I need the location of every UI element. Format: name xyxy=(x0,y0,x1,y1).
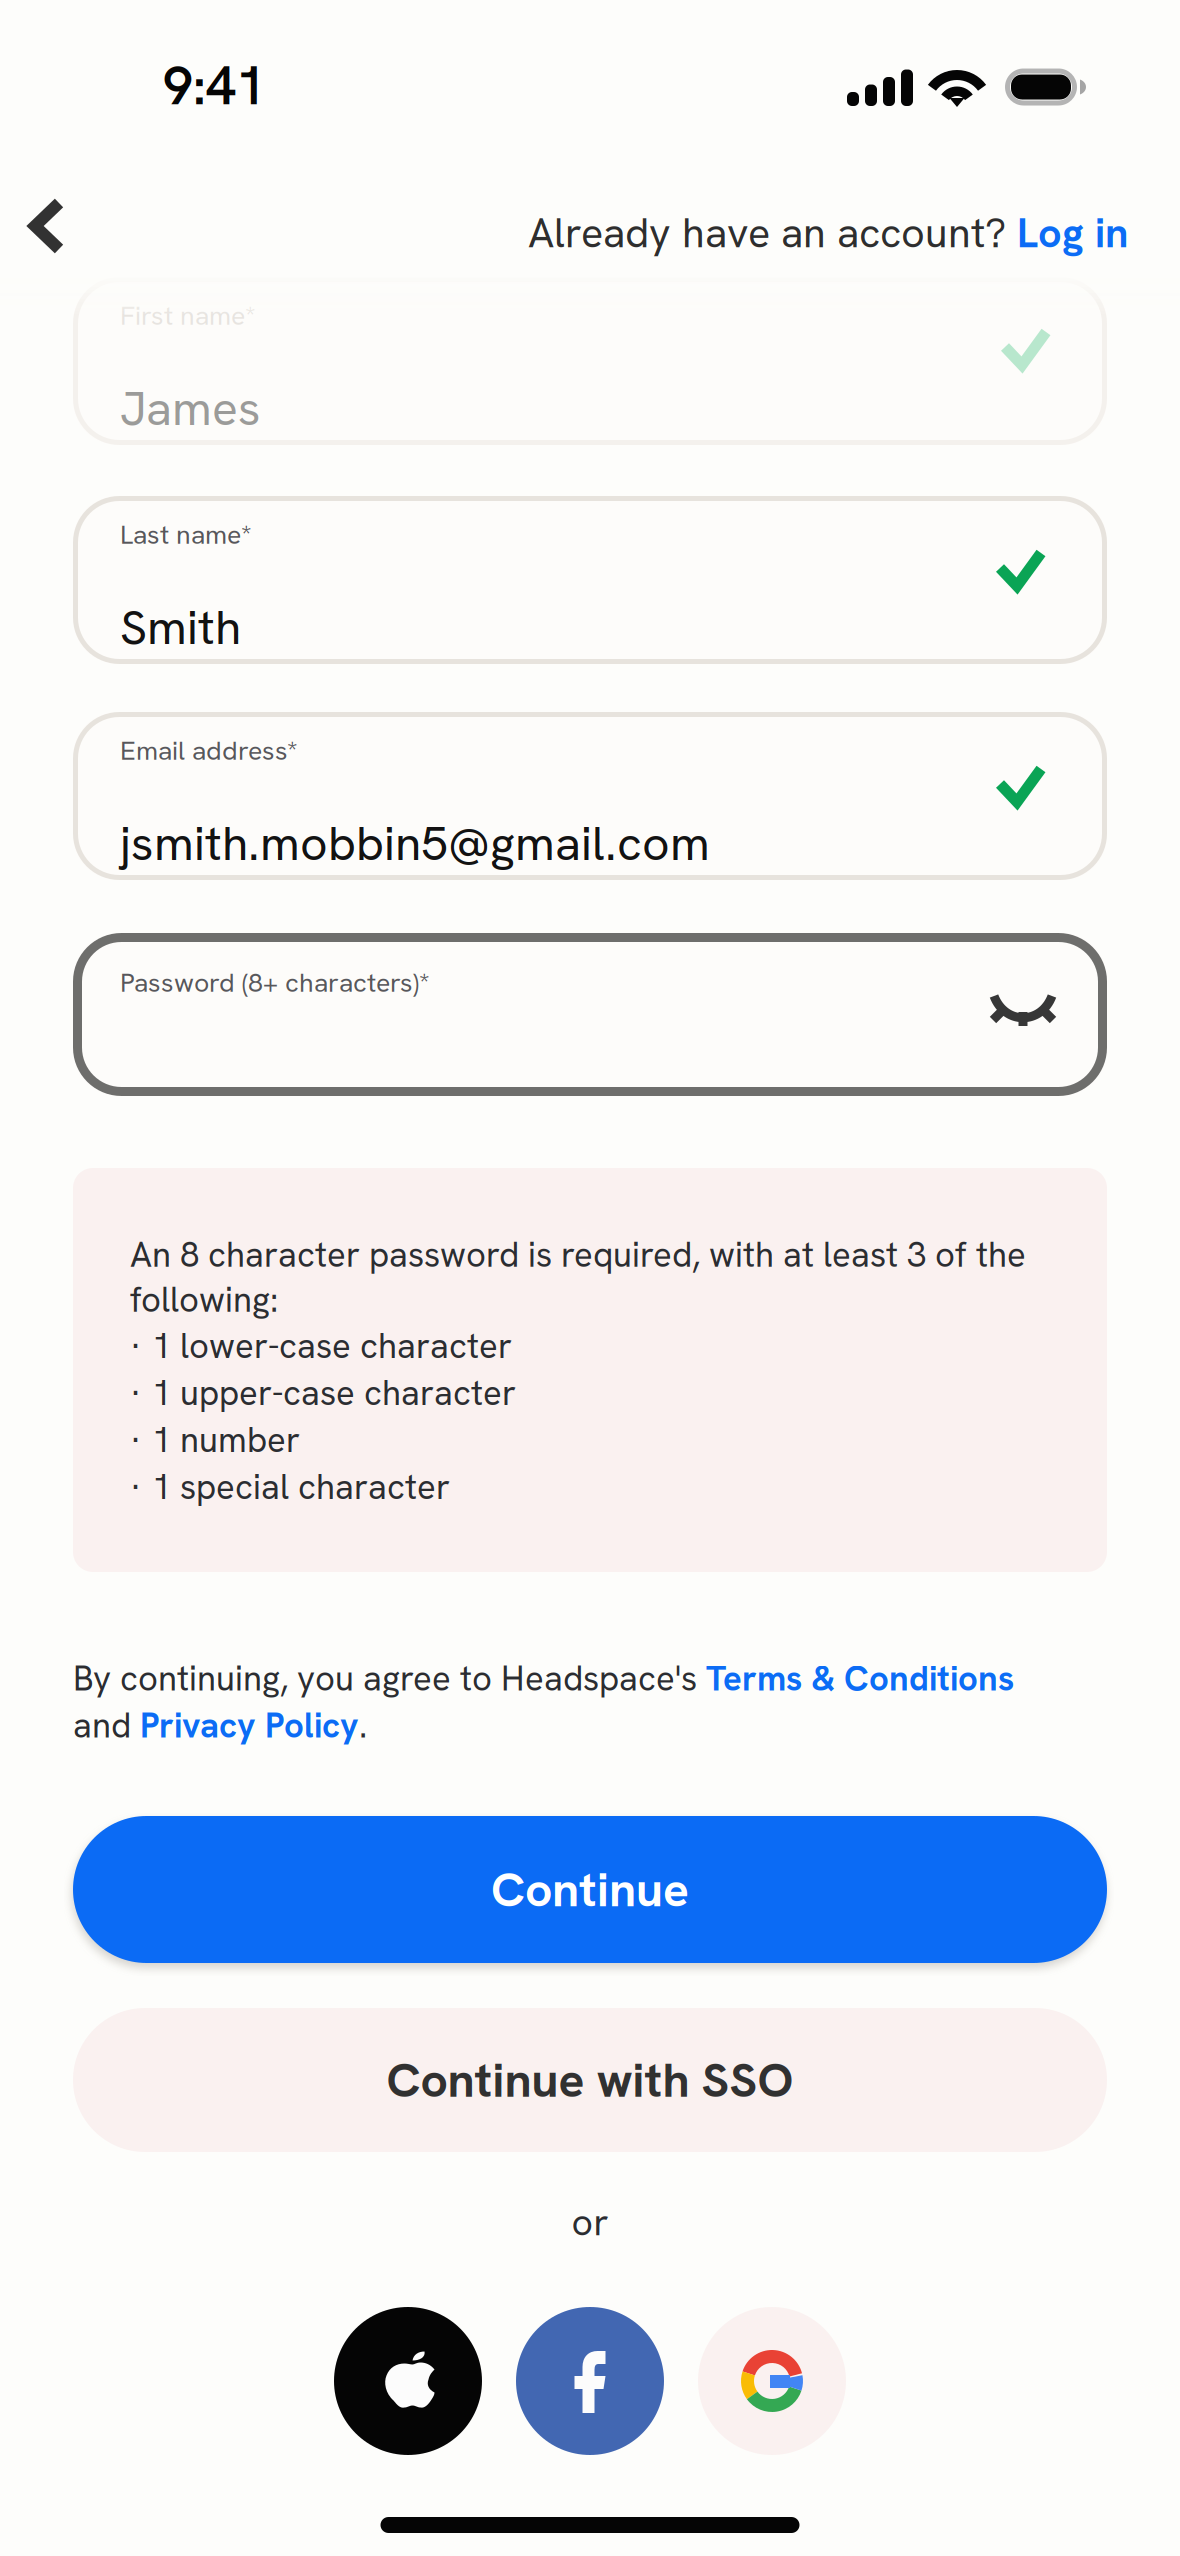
staticText: 1 number xyxy=(152,1417,300,1462)
staticText: James xyxy=(120,377,261,439)
staticText: Already have an account? xyxy=(528,206,1017,260)
staticText: Last name* xyxy=(120,517,252,552)
staticText: 1 lower-case character xyxy=(152,1323,512,1368)
staticText: · xyxy=(130,1417,142,1462)
staticText: jsmith.mobbin5@gmail.com xyxy=(120,812,710,874)
button[interactable]: Continue xyxy=(73,1816,1107,1963)
staticText: 9:41 xyxy=(163,51,266,120)
button[interactable]: Continue with Apple xyxy=(334,2307,482,2455)
staticText: · xyxy=(130,1370,142,1415)
staticText: Continue xyxy=(491,1858,689,1921)
staticText: Continue with SSO xyxy=(386,2049,793,2111)
button[interactable]: Continue with SSO xyxy=(73,2008,1107,2152)
button[interactable]: Back xyxy=(0,176,97,276)
staticText: Smith xyxy=(120,596,241,658)
staticText: . xyxy=(359,1703,367,1748)
staticText: or xyxy=(571,2198,608,2247)
staticText: An 8 character password is required, wit… xyxy=(130,1232,1026,1322)
button[interactable]: Continue with Google xyxy=(698,2307,846,2455)
button[interactable]: Continue with Facebook xyxy=(516,2307,664,2455)
staticText: Log in xyxy=(1017,206,1128,260)
staticText: 1 special character xyxy=(152,1464,450,1509)
staticText: Email address* xyxy=(120,733,298,768)
staticText: Password (8+ characters)* xyxy=(120,965,430,1000)
staticText: First name* xyxy=(120,298,256,333)
staticText: and xyxy=(73,1703,140,1748)
staticText: · xyxy=(130,1464,142,1509)
button[interactable]: Privacy Policy xyxy=(140,1703,359,1748)
button[interactable]: Already have an account? xyxy=(508,184,1148,282)
staticText: Terms & Conditions xyxy=(706,1656,1014,1701)
staticText: By continuing, you agree to Headspace's xyxy=(73,1656,706,1701)
staticText: Privacy Policy xyxy=(140,1703,359,1748)
staticText: · xyxy=(130,1323,142,1368)
staticText: 1 upper-case character xyxy=(152,1370,516,1415)
button[interactable]: Terms & Conditions xyxy=(706,1656,1014,1701)
